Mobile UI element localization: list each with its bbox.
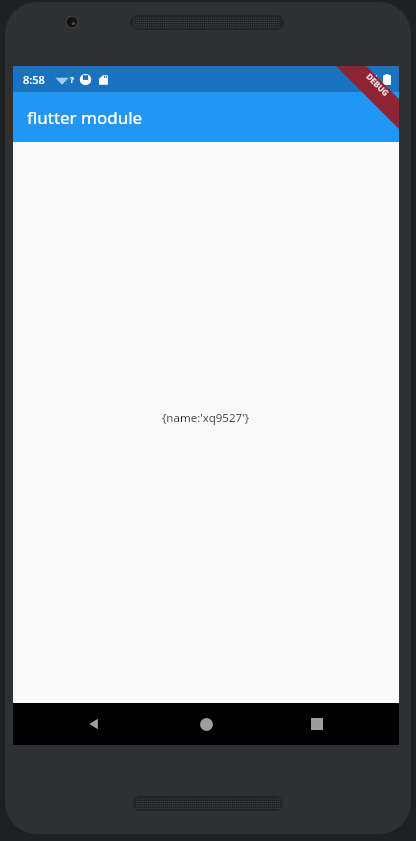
button[interactable]: Home <box>184 703 228 745</box>
button[interactable]: Back <box>72 703 116 745</box>
staticText: ? <box>70 74 74 85</box>
button[interactable]: Recent apps <box>295 703 339 745</box>
staticText: DEBUG <box>364 71 392 98</box>
staticText: 8:58 <box>23 72 45 87</box>
staticText: {name:'xq9527'} <box>162 410 250 426</box>
staticText: flutter module <box>27 106 143 129</box>
